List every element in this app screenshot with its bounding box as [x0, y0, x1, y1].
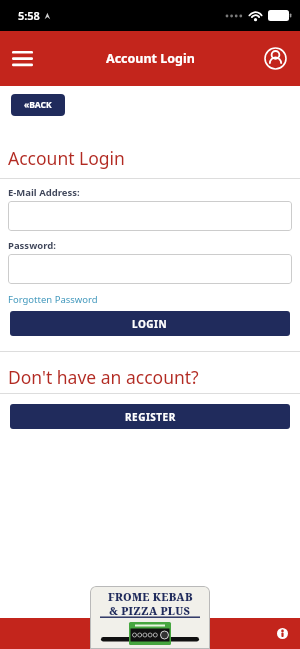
button[interactable] [11, 48, 33, 70]
staticText: REGISTER [125, 410, 176, 424]
staticText: FROME KEBAB [108, 590, 193, 604]
staticText: Don't have an account? [8, 365, 199, 389]
staticText: Password: [8, 239, 56, 252]
button[interactable] [264, 47, 287, 70]
button[interactable]: FROME KEBAB [90, 586, 210, 649]
staticText: LOGIN [132, 317, 168, 331]
button[interactable] [277, 628, 288, 639]
button[interactable]: Forgotten Password [8, 293, 98, 306]
button[interactable] [8, 201, 292, 231]
staticText: & PIZZA PLUS [109, 604, 191, 618]
button[interactable]: REGISTER [10, 404, 290, 429]
staticText: Account Login [8, 146, 125, 170]
button[interactable]: LOGIN [10, 311, 290, 336]
button[interactable]: «BACK [11, 94, 65, 116]
staticText: E-Mail Address: [8, 186, 80, 199]
staticText: «BACK [24, 99, 52, 111]
button[interactable] [8, 254, 292, 284]
staticText: 5:58 [18, 8, 40, 23]
staticText: Account Login [106, 50, 195, 67]
